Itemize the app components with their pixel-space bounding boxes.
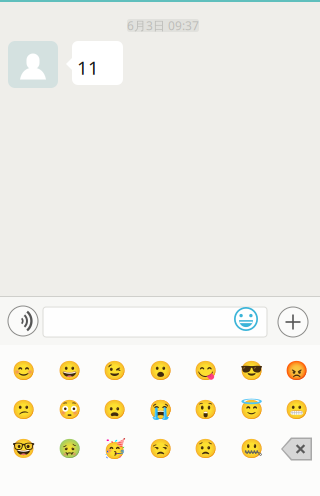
staticText: 😕 (12, 399, 35, 421)
button[interactable]: Emoji (92, 439, 137, 459)
button[interactable]: Emoji (183, 361, 228, 381)
button[interactable]: Emoji (92, 361, 137, 381)
staticText: 🥳 (103, 438, 126, 460)
staticText: 😊 (12, 360, 35, 382)
button[interactable]: Emoji (228, 361, 274, 381)
staticText: 😳 (57, 399, 80, 421)
staticText: 😬 (285, 399, 308, 421)
staticText: 11 (77, 55, 99, 80)
button[interactable]: Emoji (46, 400, 92, 420)
button[interactable]: Emoji (92, 400, 137, 420)
button[interactable]: Emoji (183, 400, 228, 420)
staticText: 😦 (103, 399, 126, 421)
button[interactable]: Emoji (228, 400, 274, 420)
staticText: 😡 (285, 360, 308, 382)
staticText: 😀 (57, 360, 80, 382)
button[interactable]: Emoji (137, 361, 183, 381)
staticText: 😎 (239, 360, 262, 382)
button[interactable]: Message (43, 307, 267, 337)
button[interactable]: Emoji (1, 439, 46, 459)
button[interactable]: More (278, 307, 308, 337)
button[interactable]: Emoji (228, 439, 274, 459)
staticText: 😋 (194, 360, 217, 382)
button[interactable]: Emoji (274, 361, 319, 381)
button[interactable]: Emoji (46, 439, 92, 459)
staticText: 🤐 (239, 438, 262, 460)
staticText: 😉 (103, 360, 126, 382)
button[interactable]: Emoji (274, 400, 319, 420)
staticText: 😭 (148, 399, 171, 421)
button[interactable]: Emoji (1, 400, 46, 420)
button[interactable]: Emoji (183, 439, 228, 459)
staticText: 😇 (239, 399, 262, 421)
button[interactable]: Emoji (1, 361, 46, 381)
staticText: 😟 (194, 438, 217, 460)
button[interactable]: Delete (274, 439, 319, 459)
staticText: 😮 (148, 360, 171, 382)
staticText: 6月3日 09:37 (127, 17, 199, 33)
button[interactable]: Emoji (232, 305, 260, 333)
staticText: 😲 (194, 399, 217, 421)
staticText: 😒 (148, 438, 171, 460)
button[interactable]: Emoji (137, 400, 183, 420)
button[interactable]: Voice message (8, 306, 38, 336)
staticText: 🤓 (12, 438, 35, 460)
button[interactable]: Emoji (46, 361, 92, 381)
button[interactable]: Emoji (137, 439, 183, 459)
staticText: 🤢 (57, 438, 80, 460)
